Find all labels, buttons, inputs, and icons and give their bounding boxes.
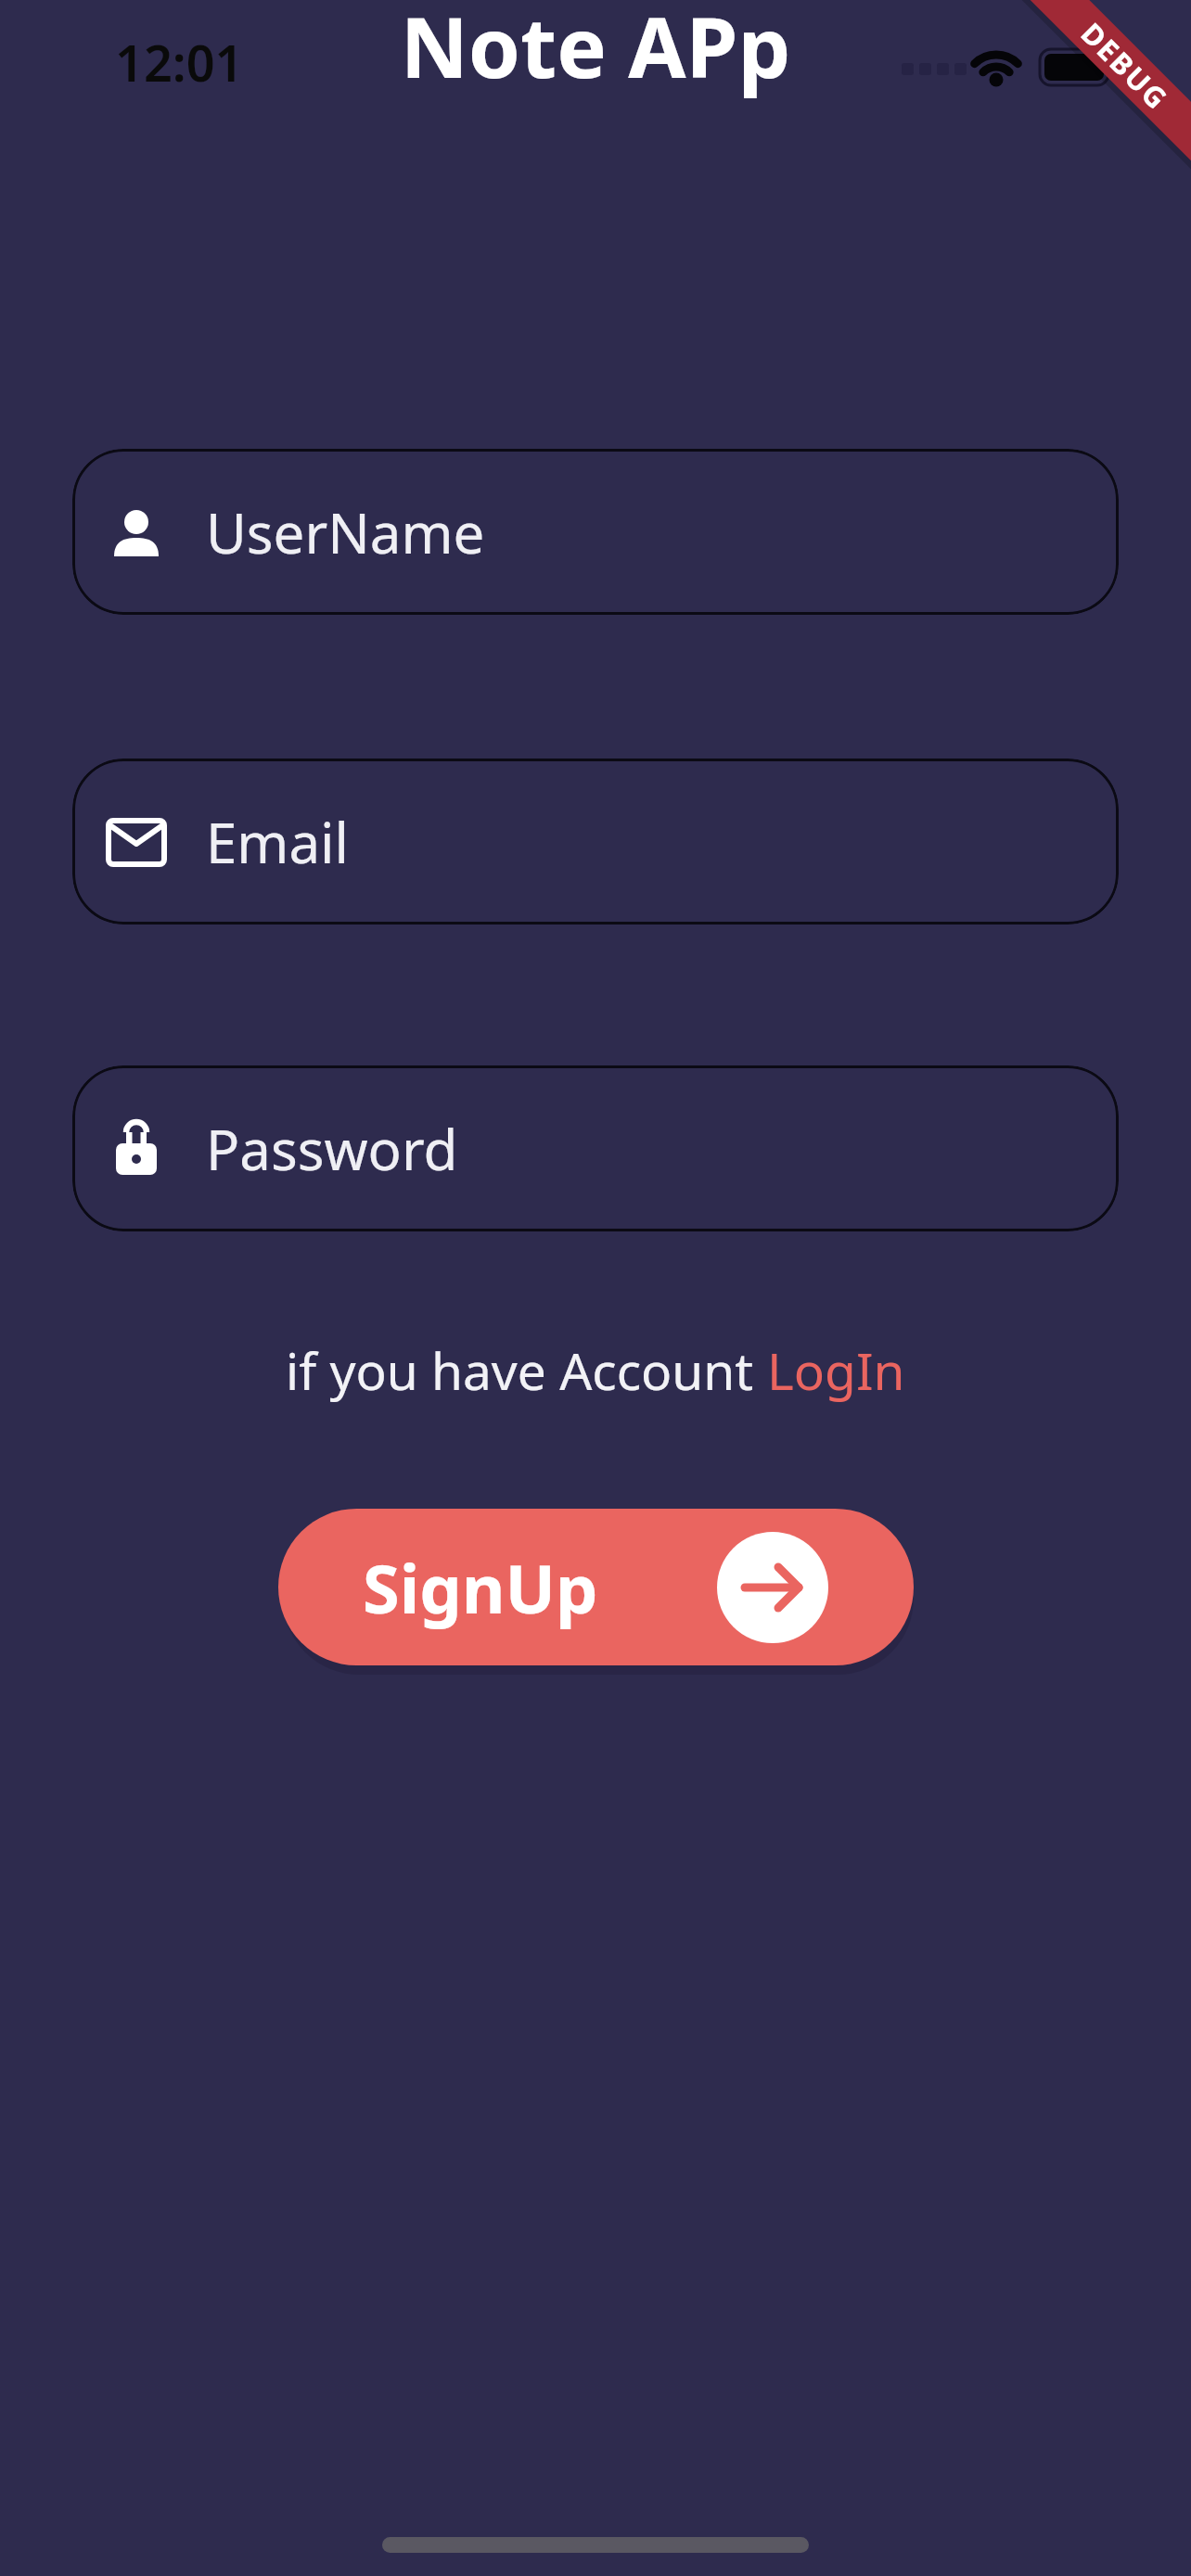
staticText: Note APp [0, 0, 1191, 103]
staticText: UserName [206, 494, 485, 570]
button[interactable]: if you have Account [286, 1335, 905, 1405]
staticText: if you have Account [286, 1335, 767, 1405]
staticText: 12:01 [115, 28, 244, 96]
staticText: Password [206, 1111, 458, 1187]
staticText: DEBUG [1073, 14, 1177, 118]
button[interactable]: Password [72, 1065, 1119, 1231]
staticText: LogIn [767, 1335, 905, 1405]
staticText: Email [206, 804, 350, 880]
staticText: SignUp [363, 1542, 598, 1633]
button[interactable]: SignUp [278, 1509, 914, 1665]
button[interactable]: Email [72, 759, 1119, 925]
button[interactable]: UserName [72, 449, 1119, 615]
